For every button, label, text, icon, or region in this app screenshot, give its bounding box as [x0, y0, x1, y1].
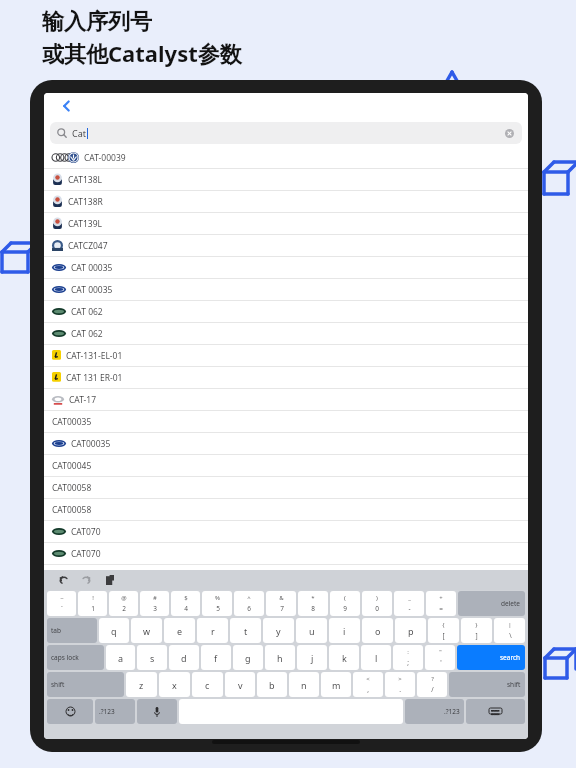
button[interactable]: c [192, 672, 223, 697]
staticText: q [111, 625, 117, 637]
button[interactable]: .?123 [405, 699, 464, 724]
button[interactable]: z [126, 672, 157, 697]
button[interactable]: | [494, 618, 525, 643]
button[interactable]: CAT00045 [44, 455, 528, 476]
button[interactable]: ( [330, 591, 360, 616]
button[interactable]: shift [47, 672, 124, 697]
button[interactable]: CAT00058 [44, 477, 528, 498]
button[interactable]: s [137, 645, 167, 670]
button[interactable]: u [296, 618, 327, 643]
button[interactable]: delete [458, 591, 525, 616]
button[interactable]: CATCZ047 [44, 235, 528, 256]
button[interactable]: $ [171, 591, 200, 616]
staticText: CAT070 [71, 548, 101, 560]
button[interactable]: CAT070 [44, 543, 528, 564]
button[interactable]: CAT 00035 [44, 257, 528, 278]
button[interactable]: # [140, 591, 169, 616]
button[interactable]: kb [466, 699, 525, 724]
button[interactable]: Redo [78, 572, 94, 588]
button[interactable]: CAT 00035 [44, 279, 528, 300]
button[interactable]: v [225, 672, 255, 697]
button[interactable]: k [329, 645, 359, 670]
button[interactable]: Cat [50, 122, 522, 144]
button[interactable]: Undo [56, 572, 72, 588]
button[interactable]: ) [362, 591, 392, 616]
staticText: 7 [280, 604, 284, 613]
button[interactable]: CAT070 [44, 521, 528, 542]
button[interactable]: q [99, 618, 129, 643]
staticText: 1 [91, 604, 95, 613]
button[interactable]: _ [394, 591, 424, 616]
button[interactable]: f [201, 645, 231, 670]
button[interactable]: CAT-17 [44, 389, 528, 410]
button[interactable]: tab [47, 618, 97, 643]
button[interactable]: emoji [47, 699, 93, 724]
button[interactable]: CAT 131 ER-01 [44, 367, 528, 388]
button[interactable]: ^ [234, 591, 264, 616]
button[interactable]: d [169, 645, 199, 670]
staticText: i [343, 625, 346, 637]
button[interactable]: CAT138R [44, 191, 528, 212]
button[interactable]: CAT00035 [44, 411, 528, 432]
button[interactable]: j [297, 645, 327, 670]
button[interactable]: m [321, 672, 351, 697]
staticText: CAT070 [71, 526, 101, 538]
button[interactable]: % [202, 591, 232, 616]
staticText: % [215, 594, 220, 602]
button[interactable]: { [428, 618, 459, 643]
button[interactable]: search [457, 645, 525, 670]
button[interactable]: ? [417, 672, 447, 697]
button[interactable]: @ [109, 591, 138, 616]
button[interactable]: shift [449, 672, 525, 697]
button[interactable]: i [329, 618, 360, 643]
button[interactable]: Paste [102, 572, 118, 588]
staticText: j [311, 652, 314, 664]
button[interactable]: w [131, 618, 162, 643]
staticText: caps lock [51, 653, 79, 662]
staticText: [ [442, 631, 445, 640]
staticText: ] [475, 631, 478, 640]
button[interactable]: CAT139L [44, 213, 528, 234]
button[interactable]: CAT00058 [44, 499, 528, 520]
staticText: * [311, 594, 315, 602]
button[interactable]: mic [137, 699, 177, 724]
button[interactable]: caps lock [47, 645, 104, 670]
button[interactable]: e [164, 618, 195, 643]
button[interactable]: CAT 062 [44, 301, 528, 322]
button[interactable]: l [361, 645, 391, 670]
button[interactable]: " [425, 645, 455, 670]
button[interactable]: : [393, 645, 423, 670]
button[interactable]: n [289, 672, 319, 697]
button[interactable]: p [395, 618, 426, 643]
button[interactable]: CAT 062 [44, 323, 528, 344]
button[interactable]: CAT-131-EL-01 [44, 345, 528, 366]
button[interactable]: t [230, 618, 261, 643]
button[interactable]: r [197, 618, 228, 643]
staticText: ) [376, 594, 378, 602]
button[interactable]: x [159, 672, 190, 697]
button[interactable]: Clear text [503, 127, 515, 139]
button[interactable]: h [265, 645, 295, 670]
button[interactable]: b [257, 672, 287, 697]
staticText: p [408, 625, 414, 637]
button[interactable]: + [426, 591, 456, 616]
button[interactable]: < [353, 672, 383, 697]
button[interactable]: ! [78, 591, 107, 616]
button[interactable]: y [263, 618, 294, 643]
button[interactable]: a [106, 645, 135, 670]
staticText: u [309, 625, 315, 637]
button[interactable]: CAT138L [44, 169, 528, 190]
button[interactable]: } [461, 618, 492, 643]
button[interactable]: * [298, 591, 328, 616]
button[interactable]: ~ [47, 591, 76, 616]
button[interactable]: g [233, 645, 263, 670]
button[interactable]: Back [54, 93, 80, 119]
button[interactable]: o [362, 618, 393, 643]
button[interactable]: & [266, 591, 296, 616]
staticText: delete [501, 599, 521, 608]
button[interactable]: CAT00035 [44, 433, 528, 454]
button[interactable]: .?123 [95, 699, 135, 724]
button[interactable]: CAT-00039 [44, 147, 528, 168]
button[interactable]: > [385, 672, 415, 697]
